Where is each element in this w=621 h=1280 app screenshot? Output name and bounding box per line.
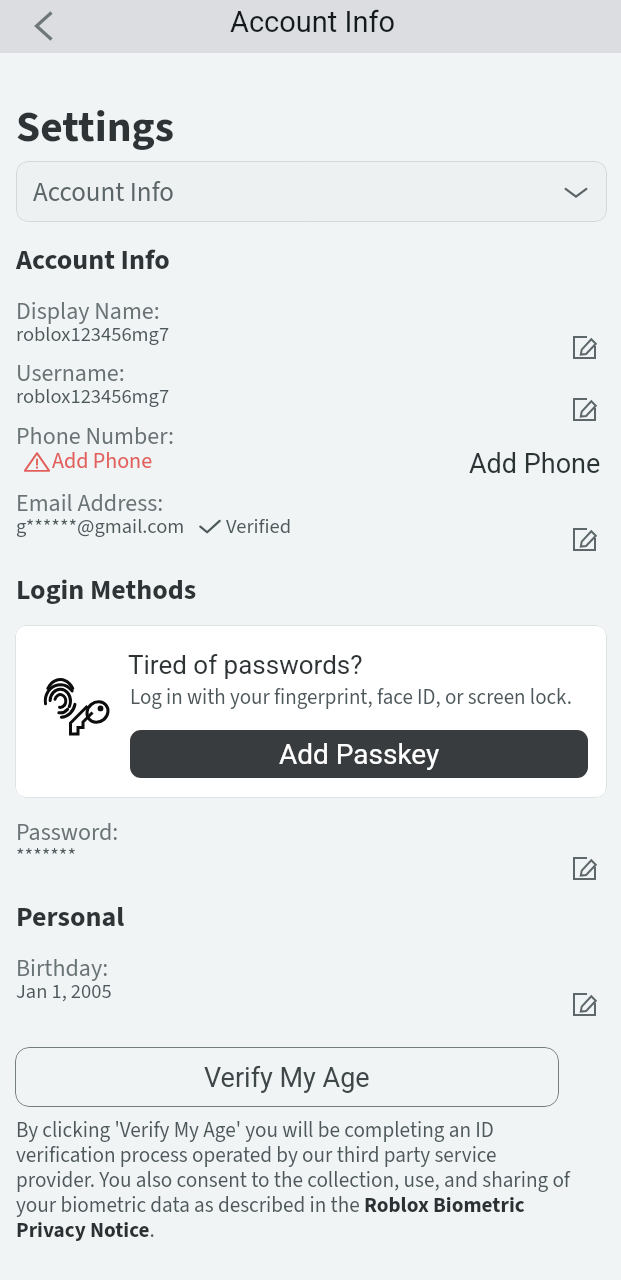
staticText: Jan 1, 2005 — [16, 977, 112, 1006]
button[interactable]: Add Passkey — [130, 730, 588, 778]
staticText: By clicking 'Verify My Age' you will be … — [16, 1115, 576, 1245]
staticText: Birthday: — [16, 951, 109, 985]
button[interactable]: Email Address: — [0, 486, 621, 546]
button[interactable]: Edit — [566, 389, 604, 427]
staticText: roblox123456mg7 — [16, 320, 170, 349]
button[interactable]: Birthday: — [0, 951, 621, 1007]
button[interactable]: Username: — [0, 356, 621, 412]
staticText: Username: — [16, 356, 125, 390]
staticText: Account Info — [230, 5, 396, 39]
staticText: Verify My Age — [204, 1062, 370, 1094]
button[interactable]: Back — [22, 4, 66, 48]
button[interactable]: Phone Number: — [0, 419, 621, 479]
staticText: Add Phone — [469, 448, 601, 480]
button[interactable]: Add Phone — [469, 448, 601, 480]
staticText: Add Passkey — [279, 738, 440, 771]
staticText: Verified — [226, 512, 292, 541]
staticText: Email Address: — [16, 486, 164, 520]
staticText: ******* — [16, 841, 76, 870]
button[interactable]: Edit — [566, 984, 604, 1022]
staticText: Display Name: — [16, 294, 160, 328]
button[interactable]: Verify My Age — [15, 1047, 559, 1107]
staticText: Personal — [16, 897, 125, 937]
staticText: Password: — [16, 815, 119, 849]
button[interactable]: Edit — [566, 848, 604, 886]
button[interactable]: Edit — [566, 327, 604, 365]
staticText: Login Methods — [16, 570, 197, 610]
button[interactable]: Account Info — [16, 161, 607, 222]
staticText: Add Phone — [52, 445, 153, 476]
button[interactable]: Edit — [566, 519, 604, 557]
staticText: g******@gmail.com — [16, 512, 185, 541]
staticText: Log in with your fingerprint, face ID, o… — [130, 682, 572, 712]
button[interactable]: Password: — [0, 815, 621, 871]
staticText: Phone Number: — [16, 419, 175, 453]
button[interactable]: Display Name: — [0, 294, 621, 350]
staticText: Account Info — [33, 173, 174, 211]
staticText: Settings — [16, 96, 175, 158]
staticText: Tired of passwords? — [128, 650, 363, 680]
staticText: Account Info — [16, 240, 170, 280]
staticText: roblox123456mg7 — [16, 382, 170, 411]
